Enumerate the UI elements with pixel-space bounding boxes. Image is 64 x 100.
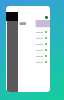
button[interactable]: Add — [45, 16, 48, 19]
button[interactable] — [18, 29, 50, 35]
button[interactable] — [18, 41, 50, 47]
button[interactable] — [18, 53, 50, 59]
button[interactable] — [18, 59, 50, 65]
button[interactable] — [18, 35, 50, 41]
button[interactable] — [18, 47, 50, 53]
